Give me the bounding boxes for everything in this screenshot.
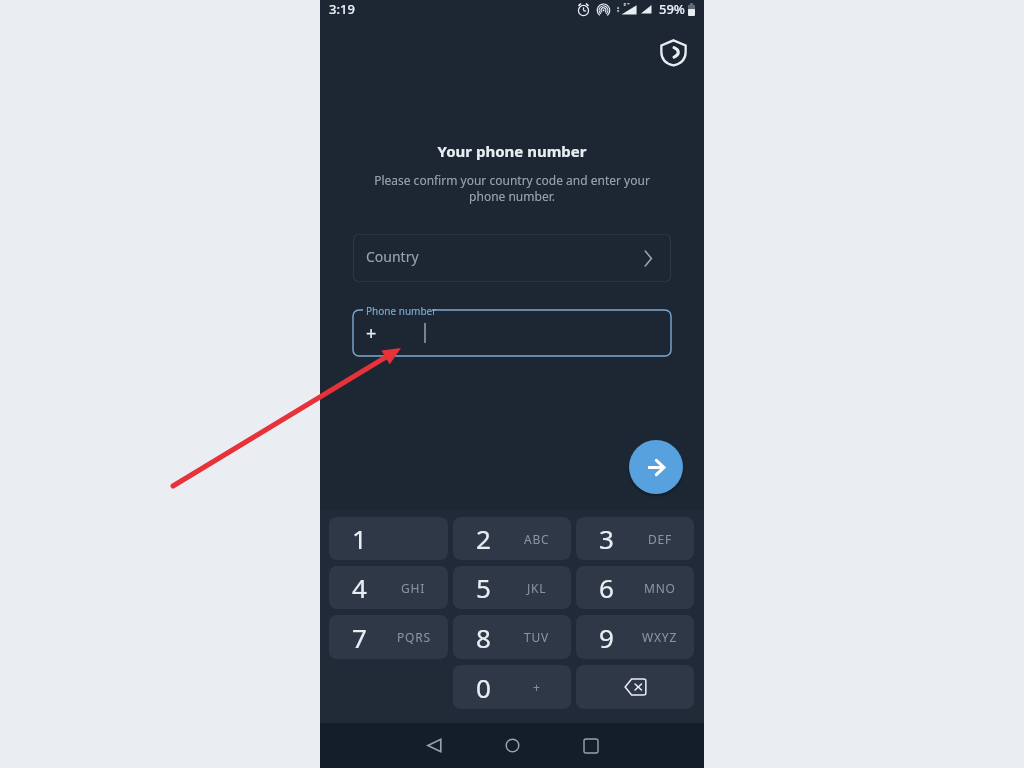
- staticText: JKL: [527, 580, 547, 596]
- staticText: 2: [476, 521, 491, 556]
- button[interactable]: Phone number: [353, 310, 671, 356]
- button[interactable]: 2: [453, 517, 571, 560]
- staticText: 3: [599, 521, 614, 556]
- button[interactable]: Backspace: [576, 665, 694, 709]
- staticText: 5: [476, 570, 491, 605]
- staticText: DEF: [648, 531, 673, 547]
- staticText: 0: [476, 670, 491, 705]
- button[interactable]: 4: [329, 566, 448, 609]
- staticText: Country: [366, 247, 419, 266]
- staticText: 8: [476, 620, 491, 655]
- button[interactable]: Home: [491, 724, 534, 767]
- staticText: TUV: [524, 629, 550, 645]
- staticText: +: [366, 321, 377, 346]
- staticText: +: [533, 679, 541, 695]
- staticText: 7: [352, 620, 367, 655]
- button[interactable]: 6: [576, 566, 694, 609]
- button[interactable]: Back: [413, 724, 456, 767]
- button[interactable]: 7: [329, 615, 448, 659]
- staticText: 1: [352, 521, 367, 556]
- button[interactable]: Country: [353, 234, 671, 282]
- staticText: 4: [352, 570, 367, 605]
- staticText: MNO: [644, 580, 676, 596]
- staticText: 3:19: [329, 0, 355, 18]
- staticText: GHI: [401, 580, 426, 596]
- staticText: Please confirm your country code and ent…: [364, 172, 660, 205]
- staticText: 6: [599, 570, 614, 605]
- button[interactable]: 9: [576, 615, 694, 659]
- button[interactable]: 0: [453, 665, 571, 709]
- button[interactable]: 1: [329, 517, 448, 560]
- button[interactable]: Privacy shield: [657, 36, 689, 68]
- staticText: 59%: [659, 0, 685, 18]
- staticText: WXYZ: [642, 629, 678, 645]
- staticText: ABC: [524, 531, 550, 547]
- button[interactable]: 8: [453, 615, 571, 659]
- button[interactable]: 3: [576, 517, 694, 560]
- staticText: Phone number: [366, 304, 437, 318]
- button[interactable]: 5: [453, 566, 571, 609]
- button[interactable]: Next: [629, 440, 683, 494]
- staticText: PQRS: [397, 629, 431, 645]
- button[interactable]: Recents: [569, 724, 612, 767]
- staticText: Your phone number: [320, 141, 704, 161]
- staticText: 9: [599, 620, 614, 655]
